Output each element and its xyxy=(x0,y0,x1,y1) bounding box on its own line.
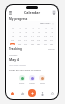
staticText: Food xyxy=(40,82,45,85)
button[interactable]: 7 xyxy=(49,31,54,34)
staticText: 15 xyxy=(11,39,14,42)
staticText: 11 xyxy=(31,35,34,38)
button[interactable]: 15 xyxy=(10,39,15,42)
button[interactable]: Profile xyxy=(38,89,46,97)
staticText: T xyxy=(19,27,21,30)
button[interactable]: Add xyxy=(28,89,36,97)
staticText: May 4 xyxy=(9,57,19,62)
staticText: May 2021 xyxy=(40,22,51,25)
staticText: 13 xyxy=(44,35,47,38)
button[interactable]: 25 xyxy=(30,43,35,45)
button[interactable]: 27 xyxy=(43,43,48,45)
staticText: 6 xyxy=(45,31,47,34)
staticText: My progress xyxy=(9,17,28,21)
staticText: 17 xyxy=(24,39,27,42)
button[interactable]: 2 xyxy=(17,31,22,34)
button[interactable]: See all xyxy=(48,48,55,51)
button[interactable]: 23 xyxy=(17,43,22,45)
staticText: 22 xyxy=(11,43,14,45)
staticText: 2 xyxy=(19,31,21,34)
staticText: 19 xyxy=(37,39,40,42)
staticText: 5 xyxy=(38,31,40,34)
button[interactable]: Water xyxy=(29,75,35,85)
staticText: M xyxy=(12,27,14,30)
button[interactable]: Stats xyxy=(18,89,26,97)
staticText: 16 xyxy=(18,39,21,42)
staticText: 24 xyxy=(24,43,27,45)
staticText: Sport xyxy=(19,82,25,85)
staticText: Your daily activity xyxy=(9,64,27,67)
staticText: 21 xyxy=(50,39,53,42)
button[interactable]: Sport xyxy=(19,75,25,85)
staticText: S xyxy=(45,27,47,30)
staticText: 28 xyxy=(50,43,53,45)
staticText: 10 xyxy=(24,35,27,38)
staticText: 20 xyxy=(44,39,47,42)
staticText: W xyxy=(25,27,27,30)
button[interactable]: 8 xyxy=(10,35,15,38)
button[interactable]: 18 xyxy=(30,39,35,42)
button[interactable]: Menu xyxy=(7,9,13,15)
staticText: 1 xyxy=(12,31,14,34)
staticText: S xyxy=(51,27,53,30)
button[interactable]: Alerts xyxy=(48,89,56,97)
staticText: 27 xyxy=(44,43,47,45)
button[interactable]: Home xyxy=(8,89,16,97)
button[interactable]: 21 xyxy=(49,39,54,42)
button[interactable]: 10 xyxy=(23,35,28,38)
staticText: 26 xyxy=(37,43,40,45)
staticText: 7 xyxy=(51,31,53,34)
staticText: Water xyxy=(29,82,35,85)
button[interactable]: 11 xyxy=(30,35,35,38)
button[interactable]: 13 xyxy=(43,35,48,38)
button[interactable]: 6 xyxy=(43,31,48,34)
button[interactable]: 22 xyxy=(10,43,15,45)
button[interactable]: 12 xyxy=(36,35,41,38)
staticText: 8 xyxy=(12,35,14,38)
staticText: Tracking xyxy=(9,47,22,51)
button[interactable]: 3 xyxy=(23,31,28,34)
button[interactable]: Food xyxy=(39,75,45,85)
staticText: F xyxy=(38,27,40,30)
staticText: 4 xyxy=(32,31,34,34)
button[interactable]: 28 xyxy=(49,43,54,45)
staticText: 23 xyxy=(18,43,21,45)
button[interactable]: 1 xyxy=(10,31,15,34)
button[interactable]: 26 xyxy=(36,43,41,45)
button[interactable]: 4 xyxy=(30,31,35,34)
button[interactable]: 5 xyxy=(36,31,41,34)
button[interactable]: 16 xyxy=(17,39,22,42)
button[interactable]: 14 xyxy=(49,35,54,38)
button[interactable]: 20 xyxy=(43,39,48,42)
staticText: Tuesday xyxy=(9,54,18,57)
staticText: 14 xyxy=(50,35,53,38)
staticText: 18 xyxy=(31,39,34,42)
staticText: 9 xyxy=(19,35,21,38)
button[interactable]: 24 xyxy=(23,43,28,45)
staticText: 3 xyxy=(25,31,27,34)
button[interactable]: Profile xyxy=(51,9,57,15)
button[interactable]: 19 xyxy=(36,39,41,42)
staticText: What do you want to track? xyxy=(9,68,41,71)
button[interactable]: 17 xyxy=(23,39,28,42)
staticText: Calendar xyxy=(24,10,41,15)
button[interactable]: 9 xyxy=(17,35,22,38)
staticText: 12 xyxy=(37,35,40,38)
staticText: T xyxy=(32,27,34,30)
staticText: 25 xyxy=(31,43,34,45)
